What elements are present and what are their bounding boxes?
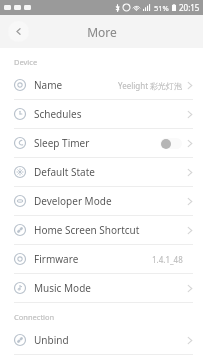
button[interactable]: Music Mode	[0, 274, 203, 302]
staticText: Device	[14, 57, 38, 67]
staticText: Unbind	[34, 333, 69, 347]
staticText: 1.4.1_48	[152, 254, 183, 265]
staticText: Home Screen Shortcut	[34, 223, 140, 237]
staticText: Firmware	[34, 252, 79, 266]
button[interactable]: Home Screen Shortcut	[0, 216, 203, 244]
staticText: Connection	[14, 312, 55, 322]
staticText: Name	[34, 78, 63, 92]
staticText: 51%	[154, 3, 169, 13]
button[interactable]: Default State	[0, 158, 203, 186]
button[interactable]: Back	[8, 21, 29, 42]
button[interactable]: Sleep Timer	[0, 129, 203, 157]
button[interactable]: Name	[0, 71, 203, 99]
staticText: Sleep Timer	[34, 136, 90, 150]
staticText: More	[87, 24, 117, 40]
staticText: Yeelight 彩光灯泡	[118, 80, 183, 91]
staticText: Schedules	[34, 107, 82, 121]
staticText: 20:15	[179, 2, 200, 13]
button[interactable]: Sleep Timer toggle	[160, 138, 182, 149]
button[interactable]: Firmware	[0, 245, 203, 273]
button[interactable]: Unbind	[0, 326, 203, 354]
staticText: Music Mode	[34, 281, 91, 295]
staticText: Default State	[34, 165, 95, 179]
button[interactable]: Developer Mode	[0, 187, 203, 215]
button[interactable]: Schedules	[0, 100, 203, 128]
staticText: Developer Mode	[34, 194, 112, 208]
